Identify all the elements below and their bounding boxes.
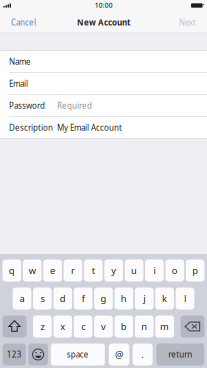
button[interactable]: Password	[0, 95, 207, 116]
staticText: Name	[9, 56, 31, 67]
button[interactable]: 123	[3, 343, 26, 365]
button[interactable]: Emoji	[28, 343, 48, 365]
staticText: r	[71, 264, 75, 277]
staticText: Required	[57, 100, 92, 111]
button[interactable]: p	[186, 259, 204, 281]
button[interactable]: g	[94, 287, 113, 309]
staticText: k	[162, 292, 167, 305]
staticText: g	[100, 292, 106, 305]
button[interactable]: Cancel	[6, 13, 41, 32]
staticText: New Account	[77, 17, 130, 28]
staticText: l	[184, 292, 186, 305]
staticText: 123	[7, 349, 22, 360]
staticText: h	[121, 292, 127, 305]
button[interactable]: u	[125, 259, 143, 281]
staticText: s	[40, 292, 44, 305]
staticText: o	[172, 264, 178, 277]
button[interactable]: f	[74, 287, 92, 309]
button[interactable]: r	[64, 259, 82, 281]
button[interactable]: Delete	[180, 315, 204, 337]
button[interactable]: o	[165, 259, 184, 281]
staticText: w	[29, 264, 36, 277]
button[interactable]: return	[156, 343, 204, 365]
button[interactable]: z	[33, 315, 52, 337]
button[interactable]: d	[53, 287, 72, 309]
button[interactable]: s	[33, 287, 52, 309]
staticText: @	[115, 348, 123, 361]
staticText: My Email Account	[57, 122, 122, 133]
staticText: Cancel	[11, 17, 36, 28]
staticText: p	[192, 264, 198, 277]
staticText: f	[82, 292, 85, 305]
staticText: 10:00	[95, 1, 113, 10]
button[interactable]: n	[135, 315, 154, 337]
button[interactable]: q	[2, 259, 21, 281]
button[interactable]: c	[74, 315, 92, 337]
button[interactable]: e	[43, 259, 62, 281]
button[interactable]: t	[84, 259, 103, 281]
staticText: y	[111, 264, 116, 277]
button[interactable]: y	[104, 259, 123, 281]
button[interactable]: j	[135, 287, 154, 309]
button[interactable]: space	[51, 343, 105, 365]
button[interactable]: .	[133, 343, 153, 365]
button[interactable]: b	[114, 315, 133, 337]
button[interactable]: Email	[0, 73, 207, 94]
staticText: x	[60, 320, 65, 333]
staticText: a	[19, 292, 24, 305]
staticText: m	[160, 320, 169, 333]
staticText: Next	[179, 17, 196, 28]
staticText: j	[143, 292, 145, 305]
button[interactable]: l	[176, 287, 194, 309]
staticText: b	[121, 320, 127, 333]
staticText: Email	[9, 78, 28, 89]
button[interactable]: a	[13, 287, 31, 309]
staticText: n	[141, 320, 147, 333]
staticText: z	[40, 320, 44, 333]
button[interactable]: Next	[174, 13, 201, 32]
button[interactable]: i	[145, 259, 164, 281]
staticText: Password	[9, 100, 45, 111]
button[interactable]: k	[155, 287, 174, 309]
staticText: t	[92, 264, 95, 277]
button[interactable]: Name	[0, 51, 207, 72]
staticText: Description	[9, 122, 53, 133]
button[interactable]: v	[94, 315, 113, 337]
staticText: space	[67, 349, 89, 360]
staticText: c	[81, 320, 85, 333]
staticText: e	[50, 264, 55, 277]
button[interactable]: m	[155, 315, 174, 337]
staticText: i	[153, 264, 155, 277]
button[interactable]: Shift	[2, 315, 26, 337]
button[interactable]: x	[53, 315, 72, 337]
staticText: v	[101, 320, 106, 333]
button[interactable]: h	[114, 287, 133, 309]
button[interactable]: Description	[0, 117, 207, 138]
staticText: u	[131, 264, 137, 277]
staticText: return	[168, 349, 192, 360]
button[interactable]: w	[23, 259, 42, 281]
staticText: .	[141, 348, 144, 361]
staticText: q	[9, 264, 15, 277]
staticText: d	[60, 292, 66, 305]
button[interactable]: @	[109, 343, 129, 365]
